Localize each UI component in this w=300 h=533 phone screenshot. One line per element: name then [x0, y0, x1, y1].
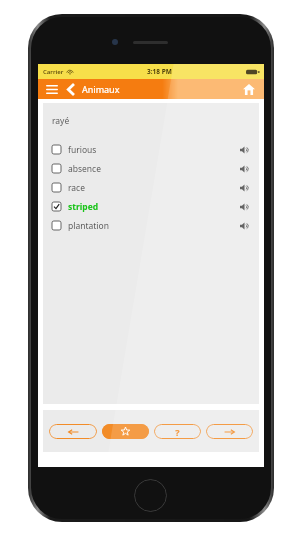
button[interactable]: striped: [43, 197, 259, 216]
staticText: ?: [175, 426, 180, 438]
button[interactable]: Previous: [49, 424, 97, 439]
button[interactable]: absence: [43, 159, 259, 178]
staticText: absence: [68, 163, 101, 175]
button[interactable]: Help: [154, 424, 201, 439]
button[interactable]: furious: [43, 140, 259, 159]
button[interactable]: Play plantation: [238, 219, 251, 232]
button[interactable]: plantation: [43, 216, 259, 235]
button[interactable]: race: [43, 178, 259, 197]
staticText: rayé: [52, 115, 70, 127]
button[interactable]: Play furious: [238, 143, 251, 156]
button[interactable]: Favorite: [102, 424, 149, 439]
button[interactable]: Play race: [238, 181, 251, 194]
button[interactable]: Next: [206, 424, 253, 439]
staticText: race: [68, 182, 85, 194]
button[interactable]: Play absence: [238, 162, 251, 175]
staticText: 3:18 PM: [147, 67, 172, 76]
staticText: striped: [68, 201, 99, 213]
staticText: plantation: [68, 220, 109, 232]
button[interactable]: Back: [63, 80, 77, 98]
staticText: Carrier: [43, 68, 64, 76]
button[interactable]: Menu: [44, 80, 60, 98]
button[interactable]: Home: [240, 80, 258, 98]
button[interactable]: Play striped: [238, 200, 251, 213]
staticText: Animaux: [82, 83, 120, 95]
staticText: furious: [68, 144, 97, 156]
